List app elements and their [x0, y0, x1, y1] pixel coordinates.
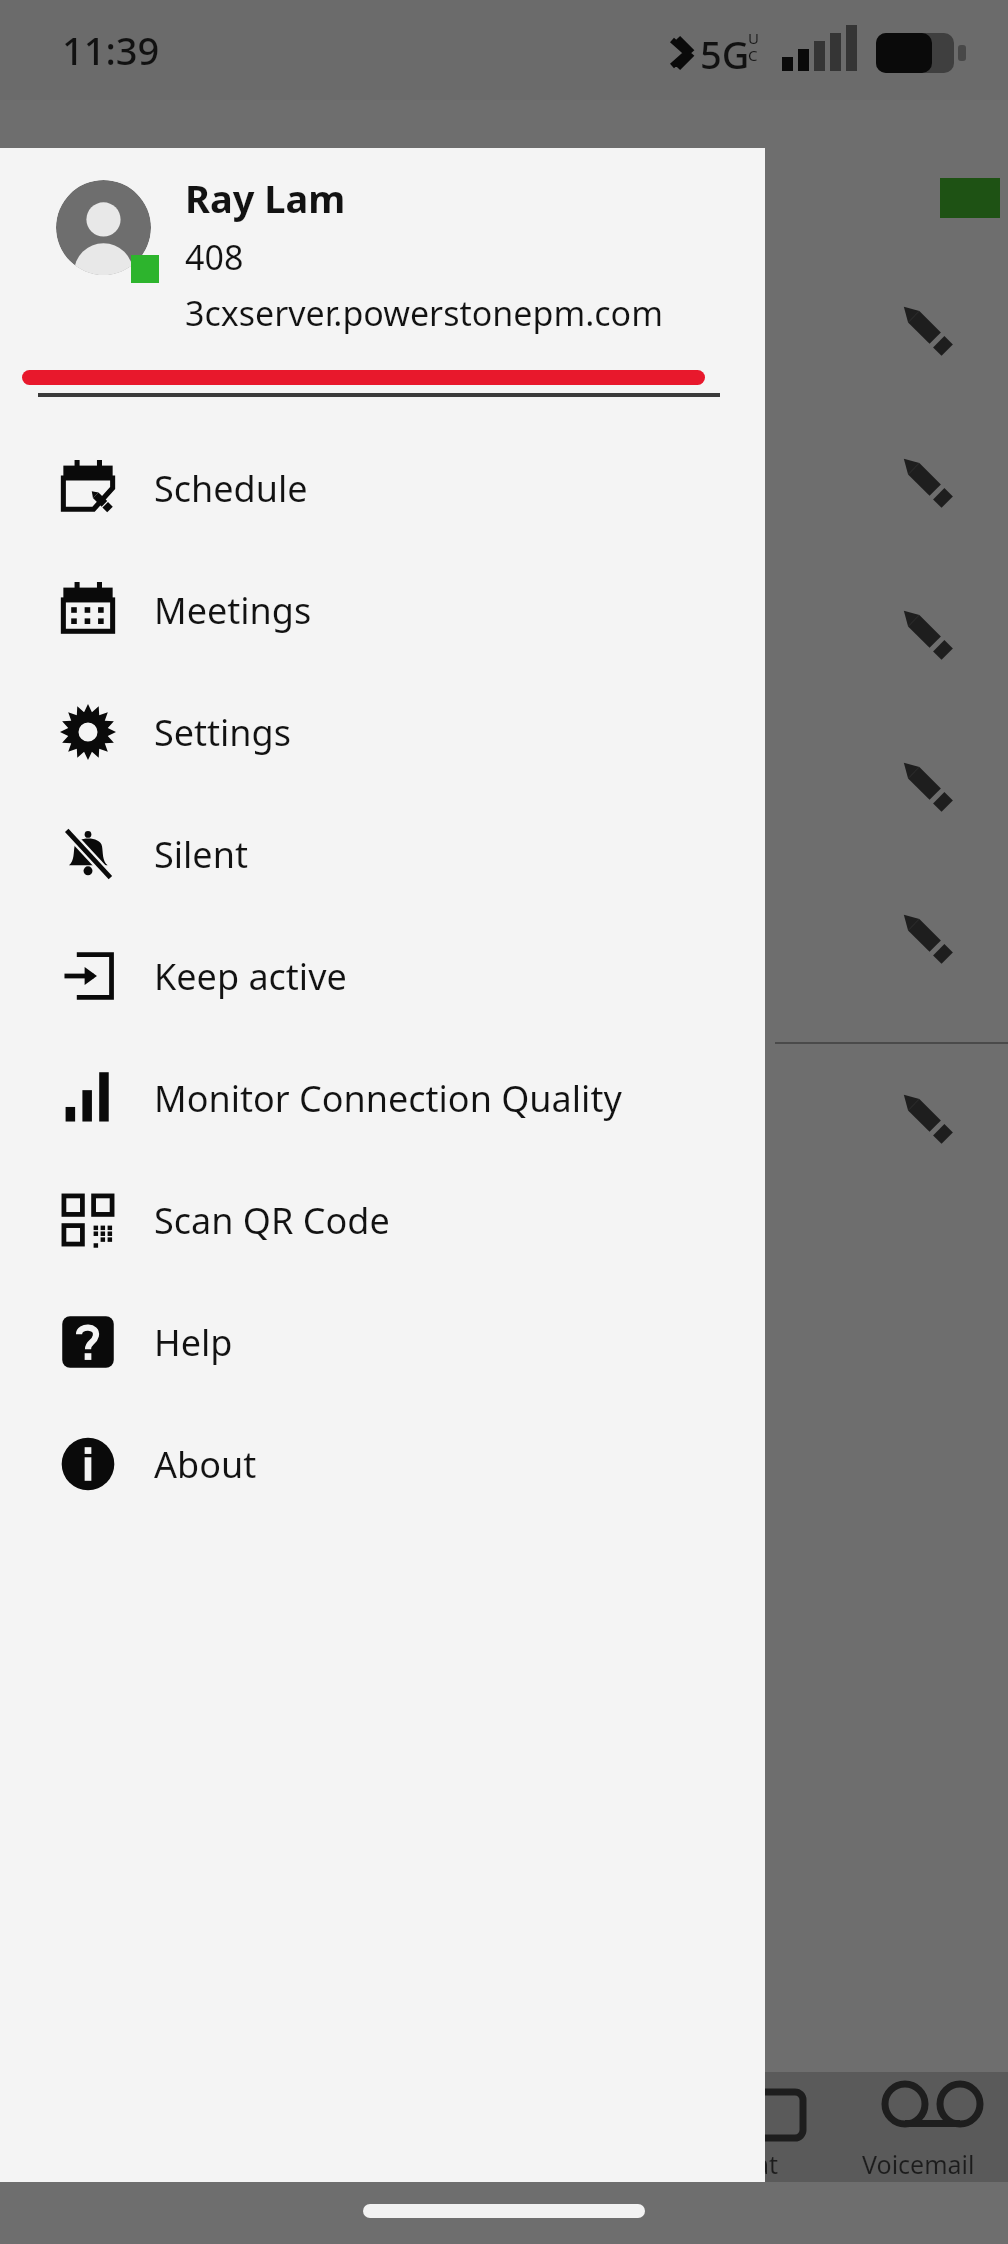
button[interactable]: About	[0, 1403, 765, 1525]
button[interactable]: Scan QR Code	[0, 1159, 765, 1281]
staticText: Silent	[154, 830, 248, 879]
button[interactable]: Keep active	[0, 915, 765, 1037]
staticText: Meetings	[154, 586, 312, 635]
staticText: Voicemail	[862, 2147, 975, 2181]
staticText: Help	[154, 1318, 233, 1367]
staticText: 11:39	[62, 24, 160, 76]
button[interactable]: Schedule	[0, 427, 765, 549]
button[interactable]: Ray Lam	[0, 148, 765, 328]
staticText: Ray Lam	[185, 172, 346, 224]
staticText: U C	[748, 28, 759, 66]
staticText: About	[154, 1440, 257, 1489]
staticText: Settings	[154, 708, 291, 757]
button[interactable]: Help	[0, 1281, 765, 1403]
staticText: Keep active	[154, 952, 347, 1001]
staticText: Scan QR Code	[154, 1196, 390, 1245]
button[interactable]: Monitor Connection Quality	[0, 1037, 765, 1159]
staticText: 408	[185, 234, 244, 280]
staticText: at	[755, 2147, 779, 2181]
button[interactable]: Silent	[0, 793, 765, 915]
button[interactable]: Meetings	[0, 549, 765, 671]
staticText: Schedule	[154, 464, 308, 513]
staticText: Monitor Connection Quality	[154, 1074, 622, 1123]
staticText: 5G	[700, 28, 750, 80]
staticText: 3cxserver.powerstonepm.com	[185, 290, 663, 336]
button[interactable]: Settings	[0, 671, 765, 793]
